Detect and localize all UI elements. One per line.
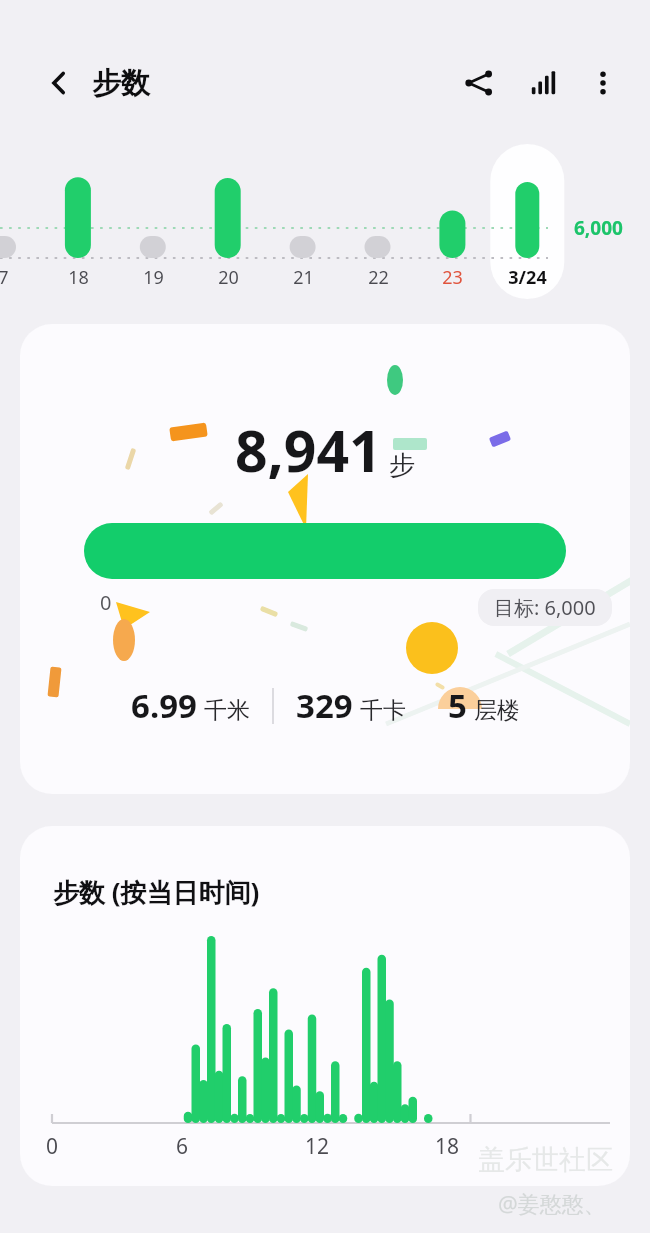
staticText: 目标: 6,000 [494,594,596,621]
staticText: 层楼 [474,696,520,725]
staticText: 18 [68,265,89,290]
staticText: 329 [296,683,353,728]
staticText: 盖乐世社区 [478,1143,613,1177]
button[interactable]: 步数 (按当日时间) [20,826,630,1186]
button[interactable]: Share [452,56,506,110]
staticText: 3/24 [508,265,547,290]
staticText: 步数 (按当日时间) [53,874,260,910]
staticText: 0 [100,589,112,616]
button[interactable]: Back [34,58,84,108]
staticText: 23 [442,265,463,290]
staticText: 18 [435,1132,460,1161]
button[interactable]: More options [576,56,630,110]
staticText: 21 [293,265,314,290]
staticText: 8,941 [235,411,382,489]
staticText: 千卡 [360,696,406,725]
staticText: 19 [143,265,164,290]
staticText: 6,000 [574,215,623,241]
staticText: 步 [389,449,415,482]
staticText: 0 [46,1132,59,1161]
button[interactable]: Chart [516,56,570,110]
staticText: 20 [218,265,239,290]
staticText: 12 [305,1132,330,1161]
staticText: 步数 [92,65,150,102]
staticText: 22 [368,265,389,290]
staticText: 6 [176,1132,189,1161]
staticText: @姜憨憨、 [498,1188,606,1218]
staticText: 千米 [204,696,250,725]
staticText: 5 [448,683,467,728]
staticText: 6.99 [131,683,197,728]
button[interactable]: 8,941 [20,324,630,794]
staticText: 7 [0,265,9,290]
